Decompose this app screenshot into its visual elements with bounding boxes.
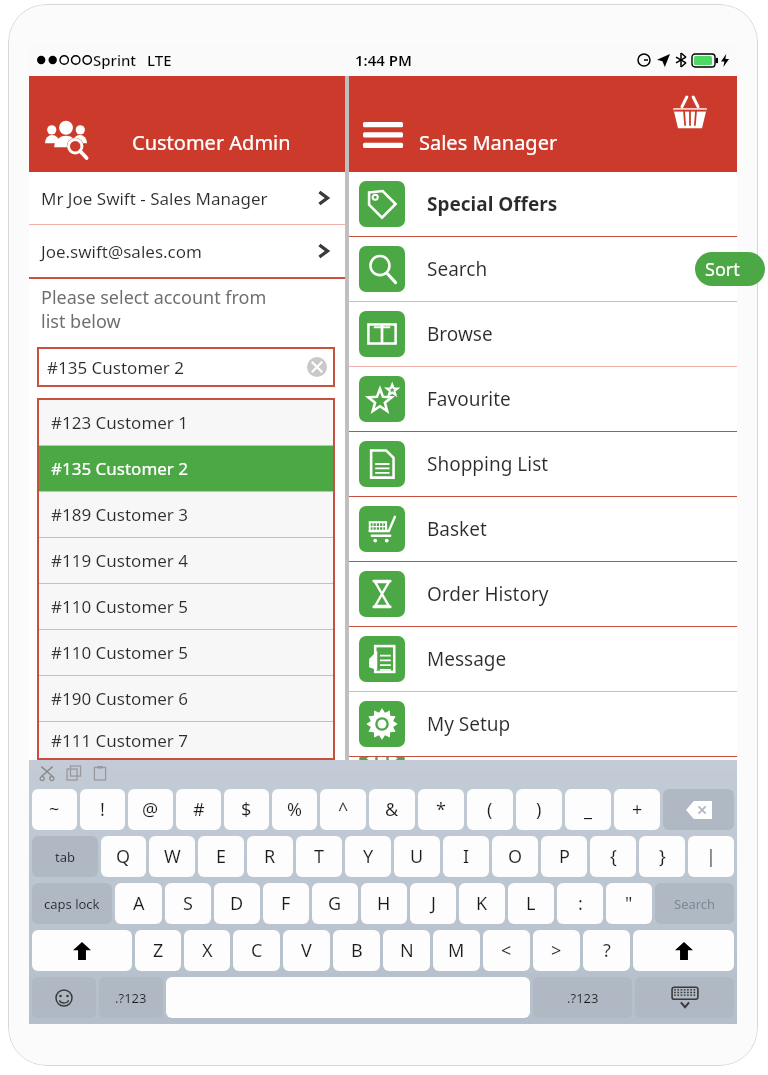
button[interactable]: Basket <box>349 497 737 561</box>
button[interactable]: caps lock <box>32 883 112 924</box>
button[interactable]: Shift <box>32 930 132 971</box>
button[interactable]: * <box>418 789 464 830</box>
button[interactable]: Basket <box>667 90 713 136</box>
button[interactable]: T <box>296 836 342 877</box>
button[interactable]: Favourite <box>349 367 737 431</box>
staticText: O <box>508 844 523 869</box>
button[interactable]: Y <box>345 836 391 877</box>
button[interactable]: B <box>333 930 380 971</box>
button[interactable] <box>166 977 530 1018</box>
button[interactable]: Browse <box>349 302 737 366</box>
button[interactable]: .?123 <box>533 977 632 1018</box>
button[interactable]: $ <box>224 789 269 830</box>
button[interactable]: #189 Customer 3 <box>39 492 333 537</box>
button[interactable]: ^ <box>320 789 366 830</box>
button[interactable]: Mr Joe Swift - Sales Manager <box>29 172 345 224</box>
button[interactable]: N <box>383 930 430 971</box>
button[interactable]: #110 Customer 5 <box>39 630 333 675</box>
button[interactable]: & <box>369 789 415 830</box>
staticText: Shopping List <box>427 451 549 477</box>
button[interactable]: Menu <box>361 114 405 158</box>
button[interactable]: { <box>590 836 636 877</box>
button[interactable]: Shift <box>633 930 734 971</box>
button[interactable]: V <box>283 930 330 971</box>
button[interactable]: Hide keyboard <box>635 977 734 1018</box>
button[interactable]: Joe.swift@sales.com <box>29 225 345 277</box>
button[interactable]: Paste <box>93 766 107 780</box>
button[interactable]: J <box>410 883 456 924</box>
button[interactable]: My Setup <box>349 692 737 756</box>
button[interactable]: ) <box>516 789 562 830</box>
button[interactable]: C <box>233 930 280 971</box>
button[interactable]: ? <box>583 930 630 971</box>
button[interactable]: Message <box>349 627 737 691</box>
button[interactable]: #135 Customer 2 <box>37 347 335 387</box>
button[interactable]: I <box>443 836 489 877</box>
button[interactable]: H <box>361 883 407 924</box>
button[interactable]: ~ <box>32 789 77 830</box>
button[interactable]: < <box>483 930 530 971</box>
button[interactable]: #135 Customer 2 <box>39 446 333 491</box>
button[interactable]: % <box>272 789 317 830</box>
button[interactable]: Sort <box>695 252 765 286</box>
button[interactable]: G <box>312 883 358 924</box>
staticText: Search <box>674 895 716 913</box>
button[interactable]: Copy <box>67 766 81 780</box>
staticText: > <box>551 938 562 963</box>
staticText: < <box>501 938 512 963</box>
button[interactable]: Shopping List <box>349 432 737 496</box>
button[interactable]: Special Offers <box>349 172 737 236</box>
button[interactable]: Customer Admin <box>43 114 89 160</box>
button[interactable]: " <box>606 883 652 924</box>
button[interactable]: : <box>557 883 603 924</box>
button[interactable]: Search <box>655 883 734 924</box>
button[interactable]: K <box>459 883 505 924</box>
staticText: #111 Customer 7 <box>51 729 189 752</box>
button[interactable]: Clear <box>307 357 327 377</box>
staticText: Special Offers <box>427 191 558 217</box>
button[interactable] <box>349 757 737 760</box>
button[interactable]: Z <box>135 930 181 971</box>
button[interactable]: _ <box>565 789 611 830</box>
button[interactable]: W <box>149 836 195 877</box>
button[interactable]: #190 Customer 6 <box>39 676 333 721</box>
button[interactable]: X <box>184 930 230 971</box>
staticText: #189 Customer 3 <box>51 503 189 526</box>
button[interactable]: Delete <box>663 789 734 830</box>
button[interactable]: # <box>176 789 221 830</box>
button[interactable]: ! <box>80 789 125 830</box>
button[interactable]: E <box>198 836 244 877</box>
staticText: B <box>351 938 363 963</box>
button[interactable]: @ <box>128 789 173 830</box>
button[interactable]: Order History <box>349 562 737 626</box>
button[interactable]: #110 Customer 5 <box>39 584 333 629</box>
button[interactable]: | <box>688 836 734 877</box>
button[interactable]: > <box>533 930 580 971</box>
button[interactable]: A <box>115 883 162 924</box>
button[interactable]: #111 Customer 7 <box>39 722 333 758</box>
button[interactable]: L <box>508 883 554 924</box>
button[interactable]: .?123 <box>99 977 163 1018</box>
button[interactable]: S <box>165 883 211 924</box>
button[interactable]: O <box>492 836 538 877</box>
button[interactable]: #119 Customer 4 <box>39 538 333 583</box>
staticText: & <box>385 797 399 822</box>
button[interactable]: P <box>541 836 587 877</box>
button[interactable]: ( <box>467 789 513 830</box>
button[interactable]: F <box>263 883 309 924</box>
button[interactable]: #123 Customer 1 <box>39 400 333 445</box>
staticText: F <box>281 891 291 916</box>
button[interactable]: Emoji <box>32 977 96 1018</box>
button[interactable]: Q <box>101 836 146 877</box>
staticText: ( <box>487 797 493 822</box>
staticText: G <box>328 891 342 916</box>
button[interactable]: Cut <box>39 765 55 781</box>
button[interactable]: } <box>639 836 685 877</box>
button[interactable]: D <box>214 883 260 924</box>
button[interactable]: R <box>247 836 293 877</box>
button[interactable]: U <box>394 836 440 877</box>
button[interactable]: Search <box>349 237 737 301</box>
button[interactable]: + <box>614 789 660 830</box>
button[interactable]: tab <box>32 836 98 877</box>
button[interactable]: M <box>433 930 480 971</box>
